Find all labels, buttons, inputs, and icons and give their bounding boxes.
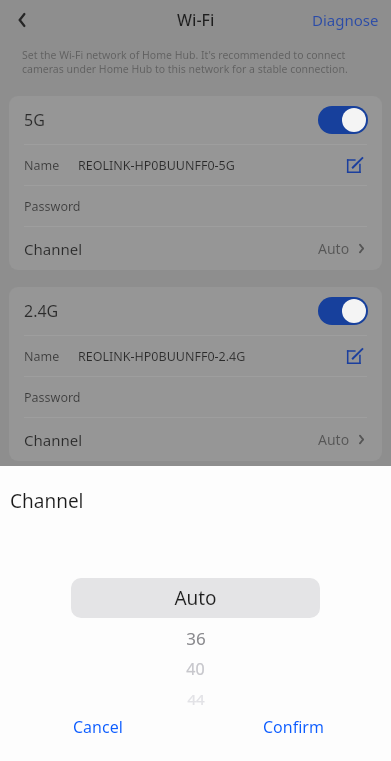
staticText: REOLINK-HP0BUUNFF0-5G	[78, 157, 235, 174]
button[interactable]: Edit name	[340, 151, 368, 179]
button[interactable]: Toggle on	[318, 297, 368, 325]
staticText: 44	[187, 689, 205, 709]
staticText: Auto	[174, 585, 217, 611]
staticText: 5G	[24, 109, 45, 131]
button[interactable]: Name	[9, 336, 382, 376]
button[interactable]: Toggle on	[318, 106, 368, 134]
button[interactable]: Confirm	[195, 707, 391, 761]
staticText: REOLINK-HP0BUUNFF0-2.4G	[78, 348, 246, 365]
button[interactable]: Name	[9, 145, 382, 185]
button[interactable]: Cancel	[0, 707, 195, 761]
button[interactable]: Channel	[9, 227, 382, 270]
staticText: Confirm	[263, 716, 324, 738]
button[interactable]: 36	[0, 626, 391, 650]
staticText: Auto	[318, 239, 350, 258]
button[interactable]: Back	[2, 0, 42, 40]
staticText: Name	[24, 348, 60, 365]
button[interactable]: Password	[9, 377, 382, 417]
button[interactable]: 5G	[9, 96, 382, 144]
button[interactable]: Diagnose	[300, 4, 391, 36]
staticText: 2.4G	[24, 300, 59, 322]
staticText: Channel	[24, 430, 83, 450]
staticText: Password	[24, 389, 81, 406]
button[interactable]: Edit name	[340, 342, 368, 370]
staticText: 36	[186, 627, 206, 650]
staticText: 40	[186, 658, 205, 680]
staticText: Cancel	[73, 716, 123, 738]
staticText: Password	[24, 198, 81, 215]
staticText: Channel	[24, 239, 83, 259]
button[interactable]: Channel	[9, 418, 382, 461]
button[interactable]: 40	[0, 657, 391, 681]
staticText: Diagnose	[312, 10, 379, 30]
staticText: Auto	[318, 430, 350, 449]
staticText: Name	[24, 157, 60, 174]
staticText: Set the Wi-Fi network of Home Hub. It's …	[22, 48, 373, 76]
button[interactable]: 2.4G	[9, 287, 382, 335]
staticText: Wi-Fi	[177, 9, 215, 31]
button[interactable]: Auto	[0, 578, 391, 618]
button[interactable]: Password	[9, 186, 382, 226]
staticText: Channel	[10, 488, 84, 514]
